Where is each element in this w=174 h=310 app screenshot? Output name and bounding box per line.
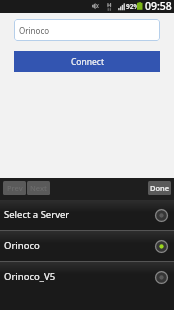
staticText: Prev [7,183,23,193]
button[interactable]: Done [148,181,171,195]
staticText: Done [150,183,170,193]
staticText: 09:58 [145,0,172,12]
other: Signal strength [117,2,126,11]
button[interactable]: Select a Server [0,200,174,230]
staticText: Select a Server [4,208,70,221]
other: HSPA network [107,3,113,11]
other: Vibrate mode [92,3,99,10]
button[interactable]: Connect [14,51,160,72]
staticText: Orinoco_V5 [4,270,56,283]
staticText: Orinoco [19,25,50,36]
button[interactable]: Orinoco_V5 [0,262,174,292]
staticText: Orinoco [4,239,40,252]
button[interactable]: Orinoco [0,231,174,261]
staticText: Connect [71,56,104,68]
other: Battery 92 percent [137,2,143,11]
staticText: Next [30,183,47,193]
staticText: 92% [126,2,140,11]
button[interactable]: Orinoco [14,19,160,41]
button[interactable]: Prev [3,181,26,195]
button[interactable]: Next [27,181,50,195]
